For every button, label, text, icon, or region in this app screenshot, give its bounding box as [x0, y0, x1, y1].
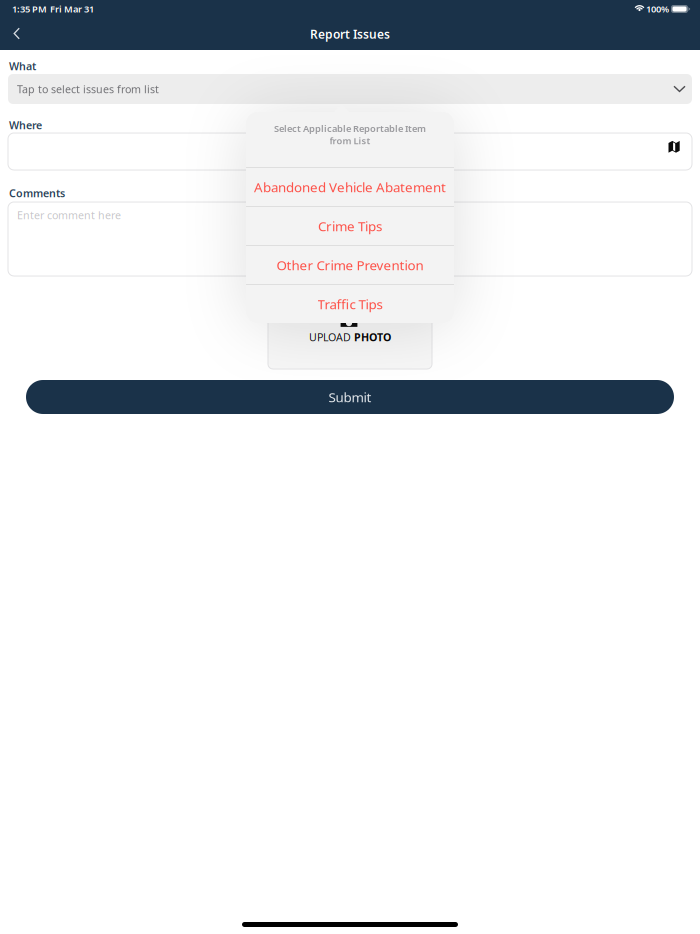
button[interactable]: Back — [4, 22, 32, 46]
staticText: Submit — [328, 388, 371, 406]
button[interactable]: Other Crime Prevention — [246, 246, 454, 284]
staticText: UPLOAD — [309, 330, 354, 344]
staticText: Traffic Tips — [317, 295, 382, 313]
staticText: Comments — [9, 186, 65, 200]
staticText: 1:35 PM — [12, 3, 47, 15]
staticText: 100% — [646, 3, 669, 15]
staticText: Fri Mar 31 — [50, 3, 94, 15]
button[interactable]: Submit — [26, 380, 674, 414]
staticText: What — [9, 59, 36, 73]
button[interactable]: Abandoned Vehicle Abatement — [246, 168, 454, 206]
button[interactable]: Pick location on map — [661, 134, 687, 160]
staticText: Crime Tips — [318, 217, 382, 235]
staticText: Tap to select issues from list — [17, 82, 159, 96]
staticText: from List — [329, 134, 370, 147]
staticText: Report Issues — [310, 26, 390, 42]
button[interactable]: Tap to select issues from list — [8, 74, 692, 104]
button[interactable]: UPLOAD — [268, 311, 432, 369]
staticText: Enter comment here — [17, 208, 121, 222]
button[interactable]: Traffic Tips — [246, 285, 454, 323]
staticText: Other Crime Prevention — [276, 256, 423, 274]
staticText: Select Applicable Reportable Item — [274, 122, 426, 134]
staticText: Abandoned Vehicle Abatement — [254, 178, 446, 196]
staticText: PHOTO — [354, 330, 391, 344]
staticText: Where — [9, 118, 42, 132]
button[interactable]: Crime Tips — [246, 207, 454, 245]
